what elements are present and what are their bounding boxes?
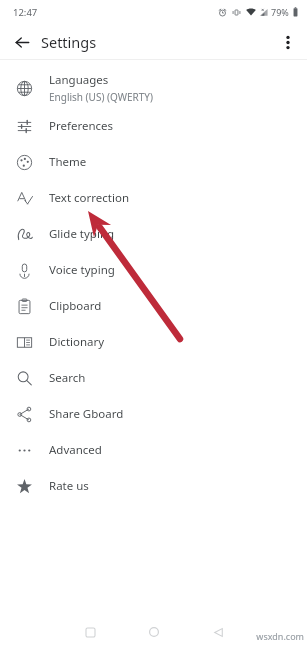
button[interactable]: Glide typing	[0, 216, 307, 252]
button[interactable]: Back	[203, 617, 233, 647]
staticText: Voice typing	[49, 262, 115, 278]
staticText: Languages	[49, 72, 109, 88]
button[interactable]: Back	[8, 28, 36, 56]
button[interactable]: Languages	[0, 68, 307, 108]
staticText: 79%	[271, 6, 289, 18]
staticText: Dictionary	[49, 334, 105, 350]
button[interactable]: Home	[139, 617, 169, 647]
staticText: Rate us	[49, 478, 89, 494]
staticText: Theme	[49, 154, 87, 170]
button[interactable]: Voice typing	[0, 252, 307, 288]
button[interactable]: Clipboard	[0, 288, 307, 324]
staticText: wsxdn.com	[256, 630, 304, 642]
button[interactable]: Theme	[0, 144, 307, 180]
staticText: English (US) (QWERTY)	[49, 90, 154, 104]
staticText: Settings	[41, 32, 97, 52]
staticText: 12:47	[13, 6, 38, 19]
button[interactable]: More options	[274, 28, 302, 56]
staticText: Advanced	[49, 442, 102, 458]
button[interactable]: Dictionary	[0, 324, 307, 360]
staticText: Clipboard	[49, 298, 102, 314]
staticText: Preferences	[49, 118, 114, 134]
staticText: Text correction	[49, 190, 130, 206]
button[interactable]: Share Gboard	[0, 396, 307, 432]
staticText: Search	[49, 370, 86, 386]
staticText: Glide typing	[49, 226, 115, 242]
button[interactable]: Recents	[75, 617, 105, 647]
button[interactable]: Text correction	[0, 180, 307, 216]
button[interactable]: Preferences	[0, 108, 307, 144]
button[interactable]: Rate us	[0, 468, 307, 504]
staticText: Share Gboard	[49, 406, 124, 422]
button[interactable]: Search	[0, 360, 307, 396]
button[interactable]: Advanced	[0, 432, 307, 468]
